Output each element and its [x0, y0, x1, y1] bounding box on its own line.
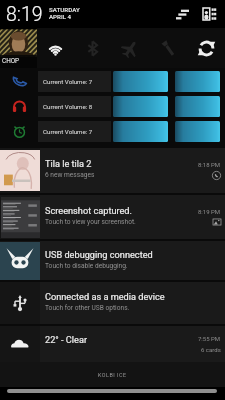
button[interactable]: Signal — [173, 5, 191, 23]
button[interactable]: Tila le tila 2 — [0, 148, 225, 193]
button[interactable]: Bluetooth — [74, 28, 111, 68]
staticText: 7:55 PM — [198, 335, 221, 342]
staticText: KOLBI ICE — [98, 372, 127, 378]
button[interactable] — [175, 121, 220, 142]
button[interactable]: Flashlight — [149, 28, 187, 68]
staticText: SATURDAY — [49, 6, 80, 13]
button[interactable]: Wi-Fi — [37, 28, 74, 68]
button[interactable]: USB debugging connected — [0, 241, 225, 280]
staticText: USB debugging connected — [45, 249, 153, 260]
staticText: 8:19 PM — [198, 208, 221, 215]
button[interactable]: 22° - Clear — [0, 326, 225, 362]
button[interactable]: Connected as a media device — [0, 282, 225, 324]
staticText: Touch for other USB options. — [45, 304, 130, 312]
staticText: Connected as a media device — [45, 291, 165, 302]
staticText: CHOP — [2, 57, 20, 65]
button[interactable] — [113, 96, 168, 117]
button[interactable]: Screenshot captured. — [0, 195, 225, 239]
button[interactable]: Current Volume: 7 — [0, 121, 225, 142]
staticText: APRIL 4 — [49, 13, 72, 20]
staticText: Current Volume: 7 — [43, 78, 93, 85]
button[interactable]: Auto rotate — [187, 28, 225, 68]
staticText: 6 cards — [201, 346, 221, 353]
button[interactable]: Current Volume: 8 — [0, 96, 225, 117]
button[interactable] — [175, 96, 220, 117]
button[interactable]: Airplane mode — [111, 28, 149, 68]
button[interactable]: Quick settings — [200, 5, 218, 23]
button[interactable] — [175, 71, 220, 92]
staticText: Touch to disable debugging. — [45, 262, 128, 270]
staticText: 6 new messages — [45, 171, 95, 179]
staticText: Current Volume: 7 — [43, 128, 93, 135]
button[interactable]: Current Volume: 7 — [0, 71, 225, 92]
staticText: 8:18 PM — [198, 161, 221, 168]
button[interactable] — [113, 71, 168, 92]
staticText: Tila le tila 2 — [45, 158, 92, 169]
staticText: 22° - Clear — [45, 334, 88, 345]
staticText: Current Volume: 8 — [43, 103, 93, 110]
staticText: 8:19 — [6, 3, 43, 26]
button[interactable] — [113, 121, 168, 142]
staticText: Touch to view your screenshot. — [45, 218, 136, 226]
staticText: Screenshot captured. — [45, 205, 132, 216]
button[interactable]: User profile — [0, 28, 37, 68]
